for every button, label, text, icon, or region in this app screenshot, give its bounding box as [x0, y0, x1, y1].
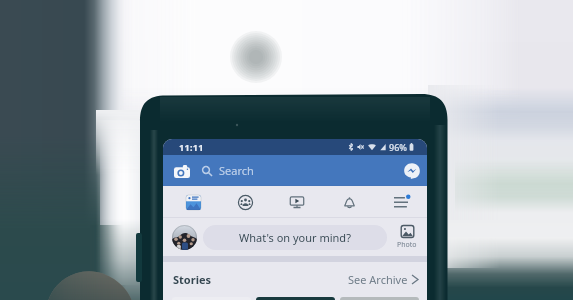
button[interactable]: Groups: [219, 186, 271, 218]
staticText: Stories: [173, 272, 212, 287]
button[interactable]: What's on your mind?: [203, 225, 387, 250]
staticText: 96%: [389, 141, 407, 153]
button[interactable]: [256, 297, 335, 300]
button[interactable]: Search: [202, 163, 404, 178]
button[interactable]: Watch: [271, 186, 323, 218]
button[interactable]: News Feed: [168, 186, 219, 218]
button[interactable]: Profile: [172, 225, 197, 250]
button[interactable]: See Archive: [348, 272, 418, 287]
button[interactable]: Photo: [394, 224, 420, 250]
button[interactable]: [340, 297, 419, 300]
staticText: What's on your mind?: [239, 230, 351, 245]
staticText: Photo: [397, 240, 417, 250]
button[interactable]: Notifications: [323, 186, 375, 218]
button[interactable]: Messenger: [404, 163, 420, 179]
button[interactable]: Menu: [375, 186, 427, 218]
button[interactable]: Camera: [173, 161, 191, 181]
staticText: 11:11: [179, 141, 204, 153]
staticText: Search: [219, 163, 254, 178]
staticText: See Archive: [348, 272, 408, 287]
